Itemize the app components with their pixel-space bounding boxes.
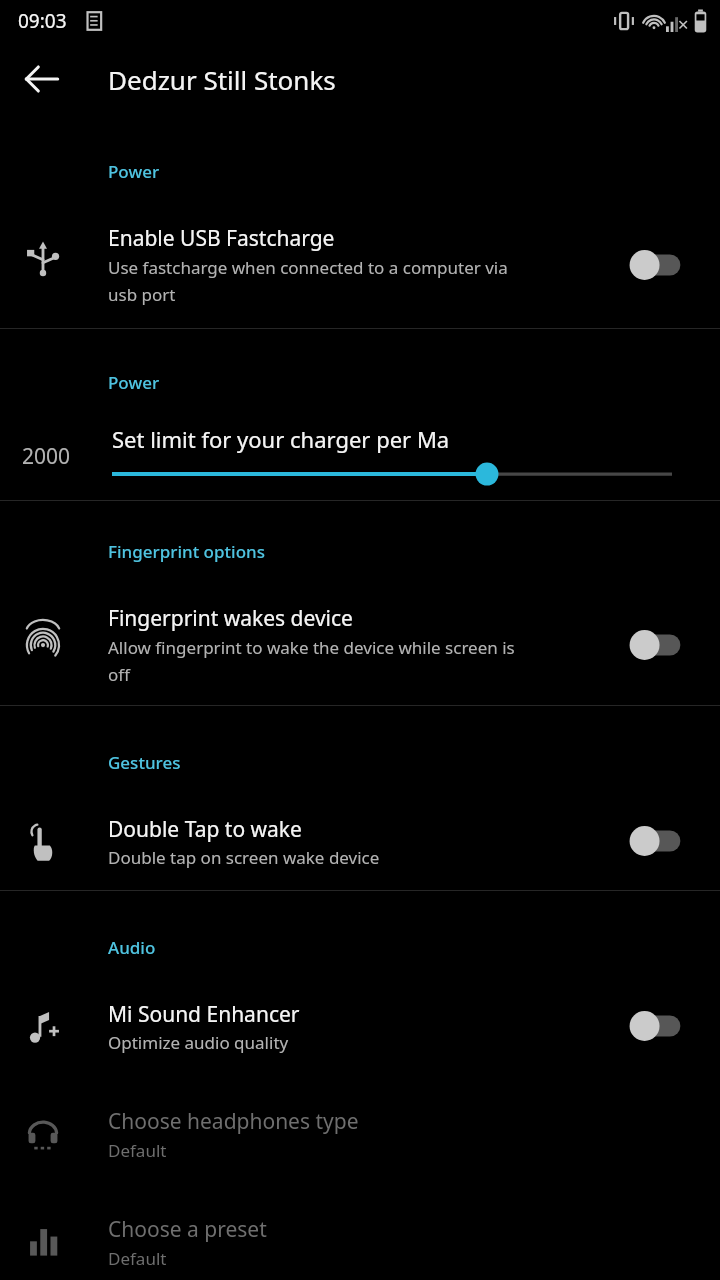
staticText: Enable USB Fastcharge [108,224,335,253]
button[interactable]: Toggle [630,630,686,660]
staticText: Default [108,1247,167,1270]
staticText: Dedzur Still Stonks [108,62,336,97]
button[interactable] [0,1090,720,1182]
staticText: Double Tap to wake [108,815,302,844]
button[interactable]: Toggle [630,250,686,280]
other: Headphones type [24,1116,62,1154]
button[interactable]: Toggle [630,1011,686,1041]
button[interactable]: Back [14,54,70,104]
staticText: Choose headphones type [108,1107,359,1136]
other: Preset [26,1225,60,1259]
button[interactable] [0,1198,720,1280]
other: USB [24,240,62,278]
staticText: Power [108,160,160,183]
staticText: 09:03 [18,8,67,34]
staticText: Power [108,371,160,394]
button[interactable] [0,512,720,705]
other: Double tap [26,822,60,864]
button[interactable]: Toggle [630,826,686,856]
staticText: Choose a preset [108,1215,267,1244]
other: Sound enhancer [24,1008,62,1048]
staticText: Audio [108,936,156,959]
staticText: Mi Sound Enhancer [108,1000,300,1029]
staticText: Default [108,1139,167,1162]
staticText: Use fastcharge when connected to a compu… [108,256,508,306]
staticText: Allow fingerprint to wake the device whi… [108,636,515,686]
button[interactable] [0,140,720,328]
staticText: Fingerprint options [108,540,265,563]
other: Fingerprint [24,622,62,664]
staticText: Optimize audio quality [108,1031,289,1054]
button[interactable] [0,718,720,890]
button[interactable] [0,975,720,1070]
staticText: Set limit for your charger per Ma [112,424,450,454]
staticText: 2000 [22,442,71,471]
staticText: Gestures [108,751,181,774]
button[interactable] [100,452,690,498]
staticText: Double tap on screen wake device [108,846,380,869]
staticText: Fingerprint wakes device [108,604,353,633]
